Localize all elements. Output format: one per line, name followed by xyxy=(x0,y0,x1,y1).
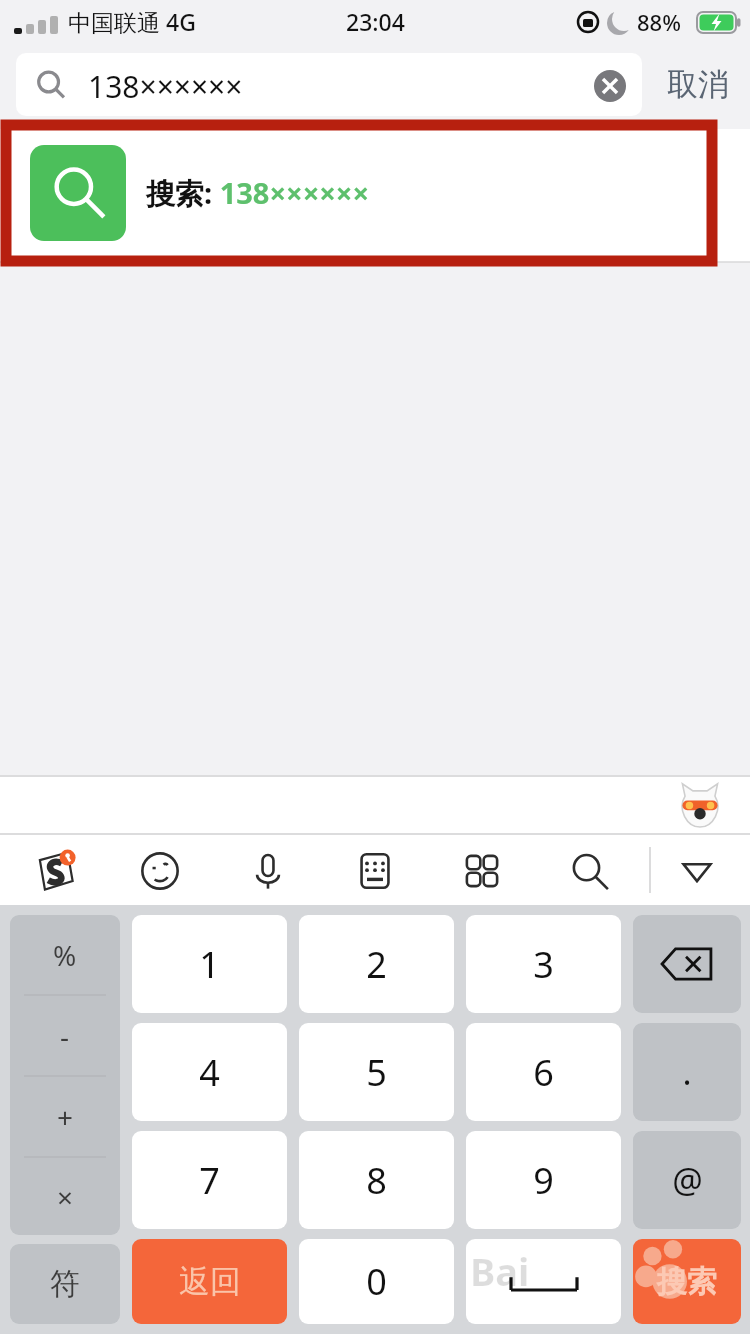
other: Space xyxy=(466,1239,621,1324)
button[interactable]: 返回 xyxy=(132,1239,287,1324)
staticText: 8 xyxy=(366,1156,387,1205)
button[interactable]: Hide keyboard xyxy=(663,837,731,905)
staticText: - xyxy=(60,1017,70,1055)
button[interactable]: Emoji xyxy=(126,837,194,905)
staticText: @ xyxy=(672,1157,703,1203)
staticText: 23:04 xyxy=(346,6,405,37)
staticText: + xyxy=(57,1098,74,1136)
staticText: 取消 xyxy=(667,65,729,104)
staticText: 返回 xyxy=(179,1262,241,1301)
button[interactable]: 3 xyxy=(466,915,621,1013)
staticText: 7 xyxy=(199,1156,220,1205)
staticText: 搜索 xyxy=(657,1263,717,1301)
button[interactable]: Search xyxy=(633,1239,741,1324)
staticText: 1 xyxy=(199,940,220,989)
button[interactable]: 9 xyxy=(466,1131,621,1229)
staticText: 0 xyxy=(366,1257,387,1306)
button[interactable]: 138×××××× xyxy=(16,53,642,116)
button[interactable]: 5 xyxy=(299,1023,454,1121)
button[interactable]: 6 xyxy=(466,1023,621,1121)
staticText: 2 xyxy=(366,940,387,989)
button[interactable]: @ xyxy=(633,1131,741,1229)
button[interactable]: % xyxy=(10,915,120,1235)
button[interactable]: 1 xyxy=(132,915,287,1013)
button[interactable]: More panels xyxy=(448,837,516,905)
button[interactable]: 搜索: 138×××××× xyxy=(14,133,704,253)
button[interactable]: Backspace xyxy=(633,915,741,1013)
other: Search xyxy=(633,1239,741,1324)
staticText: Bai xyxy=(470,1245,530,1297)
button[interactable]: Search xyxy=(555,837,623,905)
staticText: 3 xyxy=(533,940,554,989)
button[interactable]: 符 xyxy=(10,1244,120,1324)
other: Backspace xyxy=(633,915,741,1013)
staticText: 符 xyxy=(50,1265,80,1303)
button[interactable]: 4 xyxy=(132,1023,287,1121)
staticText: 4 xyxy=(199,1048,220,1097)
button[interactable]: 取消 xyxy=(655,53,741,116)
button[interactable]: Sogou input xyxy=(21,837,89,905)
staticText: 9 xyxy=(533,1156,554,1205)
staticText: 搜索: 138×××××× xyxy=(146,173,369,213)
staticText: . xyxy=(682,1049,692,1095)
staticText: 88% xyxy=(637,7,681,37)
staticText: × xyxy=(57,1178,74,1216)
button[interactable]: 8 xyxy=(299,1131,454,1229)
button[interactable]: 7 xyxy=(132,1131,287,1229)
button[interactable]: . xyxy=(633,1023,741,1121)
staticText: 5 xyxy=(366,1048,387,1097)
button[interactable]: Keyboard xyxy=(341,837,409,905)
staticText: 138×××××× xyxy=(88,66,243,107)
button[interactable]: 2 xyxy=(299,915,454,1013)
staticText: 6 xyxy=(533,1048,554,1097)
staticText: 中国联通 4G xyxy=(68,6,196,37)
button[interactable]: Space xyxy=(466,1239,621,1324)
button[interactable]: Clear text xyxy=(594,70,626,102)
button[interactable]: Voice input xyxy=(234,837,302,905)
button[interactable]: 0 xyxy=(299,1239,454,1324)
staticText: % xyxy=(53,936,77,974)
